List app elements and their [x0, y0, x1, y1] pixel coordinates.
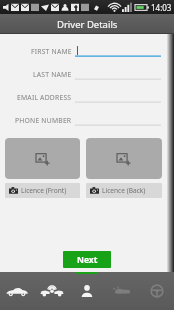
- button[interactable]: Licence (Front): [5, 183, 80, 198]
- button[interactable]: Driver: [69, 272, 104, 310]
- button[interactable]: [75, 109, 163, 132]
- staticText: Licence (Front): [21, 186, 67, 195]
- button[interactable]: Next: [63, 251, 111, 268]
- staticText: 14:03: [151, 2, 172, 13]
- staticText: LAST NAME: [33, 70, 72, 79]
- button[interactable]: Licence (Back): [86, 138, 162, 179]
- staticText: FIRST NAME: [31, 47, 72, 56]
- staticText: Licence (Back): [102, 186, 146, 195]
- button[interactable]: Accident: [34, 272, 69, 310]
- button[interactable]: Steering: [139, 272, 174, 310]
- button[interactable]: [75, 40, 163, 63]
- button[interactable]: [75, 86, 163, 109]
- staticText: PHONE NUMBER: [15, 116, 72, 125]
- button[interactable]: Vehicle: [0, 272, 34, 310]
- staticText: Driver Details: [57, 18, 118, 31]
- button[interactable]: Licence (Front): [5, 138, 80, 179]
- button[interactable]: Licence (Back): [86, 183, 162, 198]
- button[interactable]: [75, 63, 163, 86]
- staticText: EMAIL ADDRESS: [17, 93, 72, 102]
- staticText: Next: [77, 254, 98, 266]
- button[interactable]: Witness: [104, 272, 139, 310]
